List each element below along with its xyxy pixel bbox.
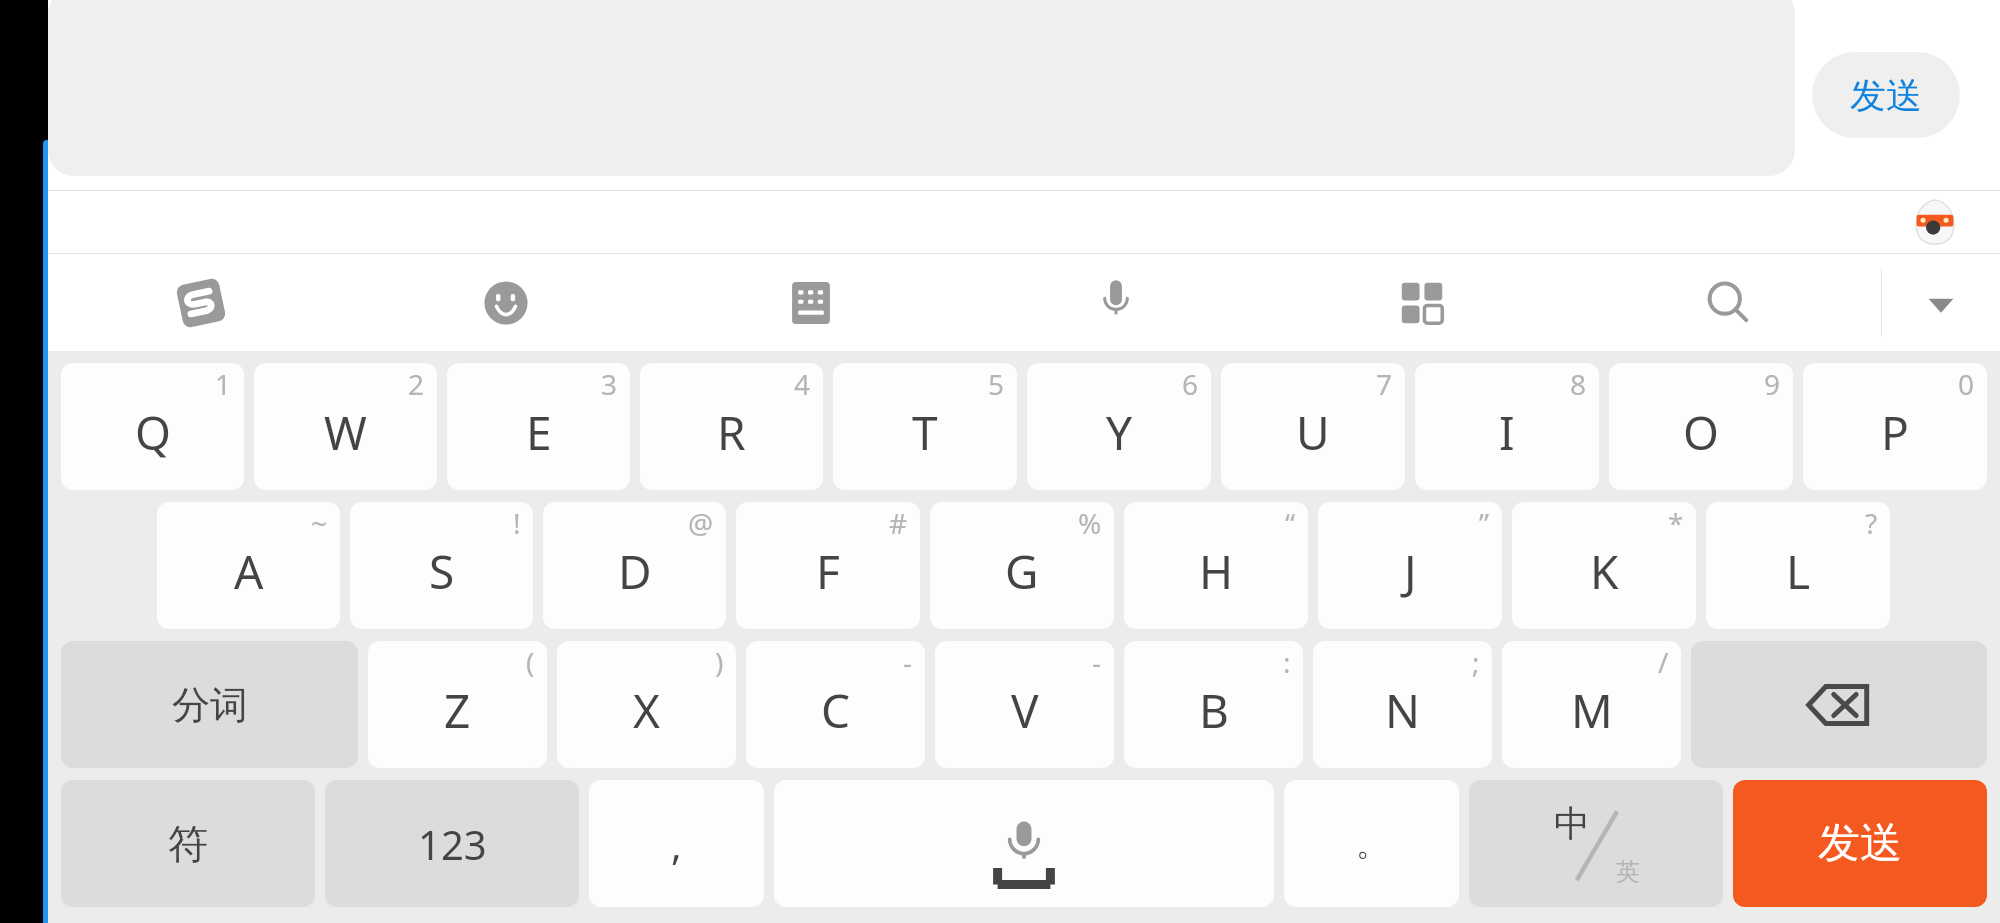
staticText: %: [1078, 504, 1102, 542]
staticText: 6: [1182, 365, 1199, 403]
staticText: Y: [1106, 401, 1133, 464]
staticText: M: [1571, 679, 1613, 742]
staticText: I: [1499, 401, 1515, 464]
staticText: T: [912, 401, 938, 464]
staticText: 。: [1356, 824, 1388, 864]
staticText: 4: [794, 365, 811, 403]
button[interactable]: D: [543, 502, 726, 629]
staticText: -: [903, 643, 913, 681]
staticText: W: [324, 401, 367, 464]
staticText: E: [526, 401, 552, 464]
button[interactable]: More tools: [1269, 254, 1575, 351]
button[interactable]: F: [736, 502, 920, 629]
staticText: B: [1199, 679, 1229, 742]
button[interactable]: 123: [325, 780, 579, 907]
staticText: #: [889, 504, 908, 542]
button[interactable]: N: [1313, 641, 1492, 768]
button[interactable]: T: [833, 363, 1017, 490]
button[interactable]: Emoji: [353, 254, 658, 351]
staticText: N: [1385, 679, 1420, 742]
button[interactable]: B: [1124, 641, 1303, 768]
staticText: -: [1092, 643, 1102, 681]
button[interactable]: Sogou input method: [48, 254, 353, 351]
button[interactable]: U: [1221, 363, 1405, 490]
staticText: Q: [135, 401, 171, 464]
button[interactable]: A: [157, 502, 340, 629]
button[interactable]: V: [935, 641, 1114, 768]
staticText: ~: [311, 504, 328, 542]
button[interactable]: P: [1803, 363, 1987, 490]
staticText: !: [513, 504, 521, 542]
staticText: 英: [1616, 857, 1640, 887]
staticText: X: [633, 679, 660, 742]
button[interactable]: Y: [1027, 363, 1211, 490]
button[interactable]: L: [1706, 502, 1890, 629]
staticText: A: [234, 540, 264, 603]
staticText: ?: [1865, 504, 1878, 542]
staticText: 发送: [1818, 817, 1902, 870]
button[interactable]: R: [640, 363, 823, 490]
staticText: L: [1786, 540, 1811, 603]
button[interactable]: X: [557, 641, 736, 768]
button[interactable]: 发送: [1733, 780, 1987, 907]
staticText: V: [1011, 679, 1039, 742]
button[interactable]: S: [350, 502, 533, 629]
button[interactable]: Q: [61, 363, 244, 490]
button[interactable]: G: [930, 502, 1114, 629]
button[interactable]: Chinese English toggle: [1469, 780, 1723, 907]
button[interactable]: Keyboard layout: [658, 254, 963, 351]
button[interactable]: H: [1124, 502, 1308, 629]
staticText: F: [816, 540, 840, 603]
staticText: D: [618, 540, 652, 603]
staticText: 8: [1570, 365, 1587, 403]
staticText: 9: [1764, 365, 1781, 403]
staticText: 发送: [1850, 73, 1922, 118]
staticText: G: [1005, 540, 1039, 603]
staticText: ”: [1479, 504, 1490, 542]
staticText: *: [1668, 504, 1684, 542]
staticText: ,: [671, 817, 682, 871]
staticText: S: [429, 540, 455, 603]
button[interactable]: Hide keyboard: [1882, 254, 2000, 351]
button[interactable]: I: [1415, 363, 1599, 490]
button[interactable]: 分词: [61, 641, 358, 768]
button[interactable]: ,: [589, 780, 764, 907]
staticText: J: [1404, 540, 1417, 603]
staticText: O: [1683, 401, 1719, 464]
button[interactable]: E: [447, 363, 630, 490]
button[interactable]: Backspace: [1691, 641, 1987, 768]
button[interactable]: 发送: [1812, 52, 1960, 138]
staticText: ;: [1472, 643, 1480, 681]
staticText: 中: [1554, 801, 1590, 846]
staticText: 2: [408, 365, 425, 403]
staticText: Z: [444, 679, 471, 742]
button[interactable]: K: [1512, 502, 1696, 629]
staticText: 7: [1376, 365, 1393, 403]
button[interactable]: W: [254, 363, 437, 490]
staticText: “: [1285, 504, 1296, 542]
button[interactable]: Search: [1575, 254, 1881, 351]
staticText: R: [717, 401, 746, 464]
button[interactable]: J: [1318, 502, 1502, 629]
button[interactable]: M: [1502, 641, 1681, 768]
staticText: ): [715, 643, 724, 681]
button[interactable]: Z: [368, 641, 547, 768]
button[interactable]: Assistant: [1912, 199, 1958, 245]
button[interactable]: 。: [1284, 780, 1459, 907]
staticText: 3: [601, 365, 618, 403]
staticText: @: [688, 504, 714, 542]
button[interactable]: Space: [774, 780, 1274, 907]
staticText: C: [821, 679, 851, 742]
staticText: (: [526, 643, 535, 681]
button[interactable]: 符: [61, 780, 315, 907]
staticText: U: [1296, 401, 1330, 464]
button[interactable]: Voice input: [963, 254, 1269, 351]
staticText: 123: [418, 817, 487, 871]
staticText: 分词: [172, 681, 248, 729]
button[interactable]: C: [746, 641, 925, 768]
button[interactable]: O: [1609, 363, 1793, 490]
staticText: 符: [168, 819, 208, 869]
staticText: :: [1283, 643, 1291, 681]
staticText: P: [1881, 401, 1909, 464]
